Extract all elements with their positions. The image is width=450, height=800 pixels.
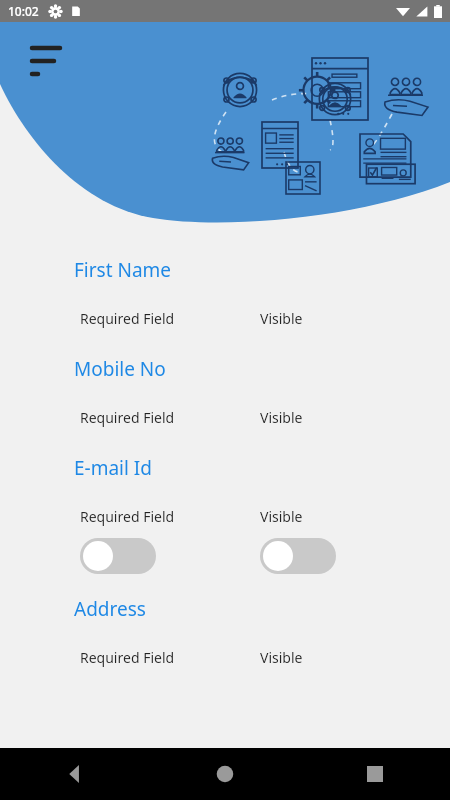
staticText: 10:02 xyxy=(8,3,39,19)
staticText: Required Field xyxy=(80,507,175,526)
staticText: E-mail Id xyxy=(74,455,152,481)
button[interactable]: Toggle xyxy=(260,538,336,574)
button[interactable]: Home xyxy=(150,748,300,800)
button[interactable]: Mobile No xyxy=(0,356,450,382)
button[interactable]: Toggle xyxy=(80,538,156,574)
staticText: Mobile No xyxy=(74,356,166,382)
button[interactable]: Address xyxy=(0,596,450,622)
button[interactable]: E-mail Id xyxy=(0,455,450,481)
staticText: Required Field xyxy=(80,648,175,667)
staticText: Required Field xyxy=(80,309,175,328)
staticText: Required Field xyxy=(80,408,175,427)
staticText: Visible xyxy=(260,648,303,667)
button[interactable]: Back xyxy=(0,748,150,800)
button[interactable]: Menu xyxy=(26,36,60,70)
button[interactable]: First Name xyxy=(0,257,450,283)
staticText: Address xyxy=(74,596,146,622)
staticText: First Name xyxy=(74,257,172,283)
staticText: Visible xyxy=(260,507,303,526)
staticText: Visible xyxy=(260,408,303,427)
button[interactable]: Recents xyxy=(300,748,450,800)
staticText: Visible xyxy=(260,309,303,328)
